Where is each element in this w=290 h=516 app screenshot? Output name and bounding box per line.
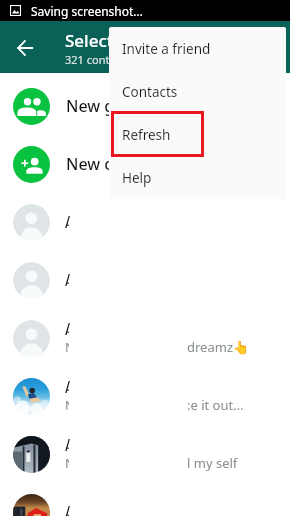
staticText: dreamz👆 [187,338,250,356]
button[interactable]: N [0,309,290,367]
staticText: Contacts [122,83,178,101]
staticText: N [65,396,69,412]
button[interactable] [0,483,290,516]
button[interactable]: Refresh [109,113,286,156]
button[interactable]: New contact [0,135,290,193]
staticText: Select contact [65,29,179,52]
staticText: New contact [66,153,162,175]
button[interactable]: Help [109,156,286,199]
button[interactable]: New group [0,77,290,135]
staticText: Help [122,169,152,187]
button[interactable]: N [0,425,290,483]
staticText: Saving screenshot… [31,3,143,19]
button[interactable]: Invite a friend [109,27,286,70]
staticText: :e it out… [187,396,244,414]
staticText: N [65,338,69,354]
button[interactable]: Back [3,26,47,70]
staticText: Invite a friend [122,40,211,58]
staticText: l my self [187,454,238,472]
staticText: N [65,454,69,470]
button[interactable] [0,193,290,251]
staticText: New group [66,95,151,117]
staticText: 321 contacts [65,52,131,67]
button[interactable]: Contacts [109,70,286,113]
button[interactable]: N [0,367,290,425]
staticText: Refresh [122,126,171,144]
button[interactable] [0,251,290,309]
